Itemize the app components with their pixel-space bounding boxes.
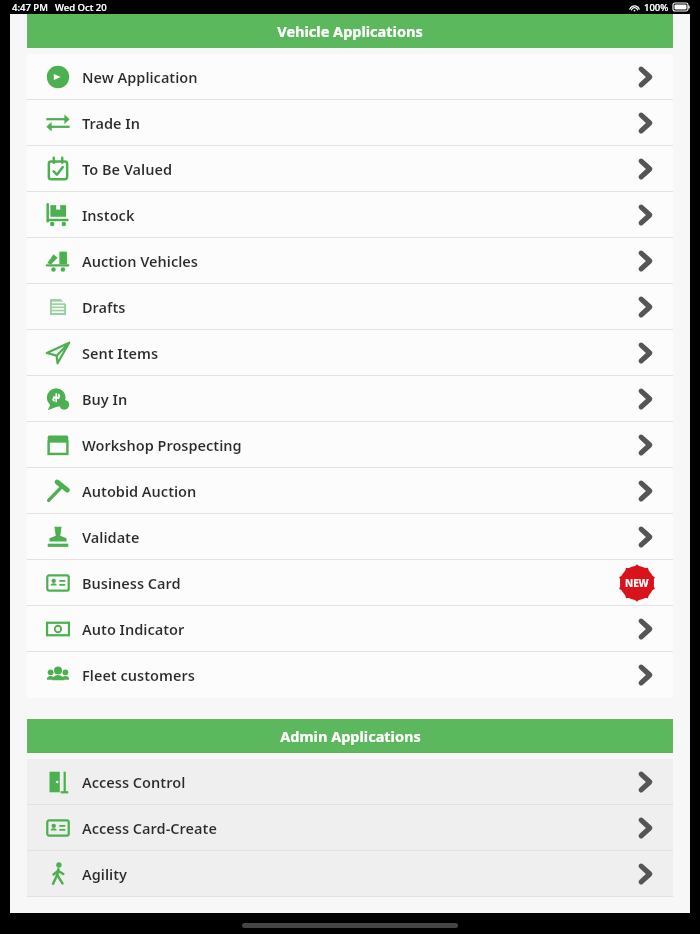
staticText: New Application [82, 67, 198, 87]
staticText: Vehicle Applications [277, 21, 423, 41]
button[interactable]: Trade In [27, 100, 673, 146]
button[interactable]: Auction Vehicles [27, 238, 673, 284]
button[interactable]: Auto Indicator [27, 606, 673, 652]
staticText: Workshop Prospecting [82, 435, 242, 455]
button[interactable]: Access Control [27, 759, 673, 805]
staticText: 100% [644, 1, 669, 14]
staticText: Drafts [82, 297, 126, 317]
staticText: Autobid Auction [82, 481, 197, 501]
button[interactable]: Access Card-Create [27, 805, 673, 851]
staticText: Buy In [82, 389, 128, 409]
button[interactable]: Agility [27, 851, 673, 897]
button[interactable]: Drafts [27, 284, 673, 330]
button[interactable]: Autobid Auction [27, 468, 673, 514]
staticText: To Be Valued [82, 159, 173, 179]
button[interactable]: Validate [27, 514, 673, 560]
button[interactable]: Workshop Prospecting [27, 422, 673, 468]
staticText: Admin Applications [280, 726, 421, 746]
button[interactable]: Fleet customers [27, 652, 673, 698]
button[interactable]: Business Card [27, 560, 673, 606]
staticText: Access Card-Create [82, 818, 217, 838]
staticText: Instock [82, 205, 135, 225]
staticText: Trade In [82, 113, 140, 133]
staticText: NEW [625, 576, 649, 590]
staticText: Agility [82, 864, 127, 884]
button[interactable]: New Application [27, 54, 673, 100]
staticText: 4:47 PM [12, 1, 48, 14]
staticText: Access Control [82, 772, 186, 792]
button[interactable]: Sent Items [27, 330, 673, 376]
staticText: Auto Indicator [82, 619, 185, 639]
staticText: Wed Oct 20 [55, 1, 107, 14]
button[interactable]: Buy In [27, 376, 673, 422]
button[interactable]: Instock [27, 192, 673, 238]
staticText: Sent Items [82, 343, 159, 363]
staticText: Auction Vehicles [82, 251, 198, 271]
staticText: Fleet customers [82, 665, 195, 685]
staticText: Validate [82, 527, 140, 547]
button[interactable]: To Be Valued [27, 146, 673, 192]
staticText: Business Card [82, 573, 181, 593]
